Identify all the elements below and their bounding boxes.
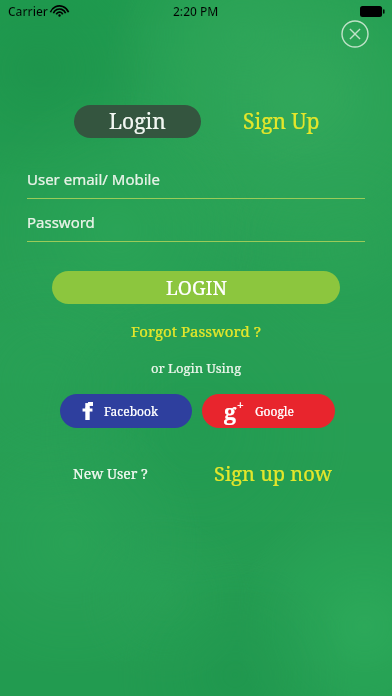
button[interactable]: Login (74, 105, 201, 138)
staticText: New User ? (73, 464, 148, 483)
staticText: Sign up now (214, 460, 332, 487)
button[interactable]: Facebook (60, 394, 192, 428)
staticText: g (224, 396, 237, 426)
staticText: User email/ Mobile (27, 169, 160, 189)
staticText: Facebook (104, 403, 158, 419)
button[interactable]: Forgot Password ? (127, 317, 265, 345)
button[interactable]: Sign Up (241, 103, 322, 140)
button[interactable]: Sign up now (211, 457, 335, 490)
staticText: Password (27, 212, 95, 232)
staticText: 2:20 PM (173, 3, 219, 19)
staticText: LOGIN (166, 275, 227, 301)
staticText: or Login Using (0, 359, 392, 377)
staticText: Carrier (8, 3, 48, 19)
button[interactable]: Close (339, 18, 371, 50)
button[interactable]: LOGIN (52, 271, 340, 304)
staticText: Forgot Password ? (131, 321, 261, 341)
staticText: Sign Up (243, 107, 320, 136)
staticText: + (237, 397, 244, 413)
button[interactable]: g (202, 394, 335, 428)
staticText: Google (255, 403, 295, 419)
button[interactable]: New User ? (70, 461, 151, 486)
button[interactable]: Password (27, 212, 365, 242)
button[interactable]: User email/ Mobile (27, 169, 365, 199)
staticText: Login (109, 107, 166, 136)
